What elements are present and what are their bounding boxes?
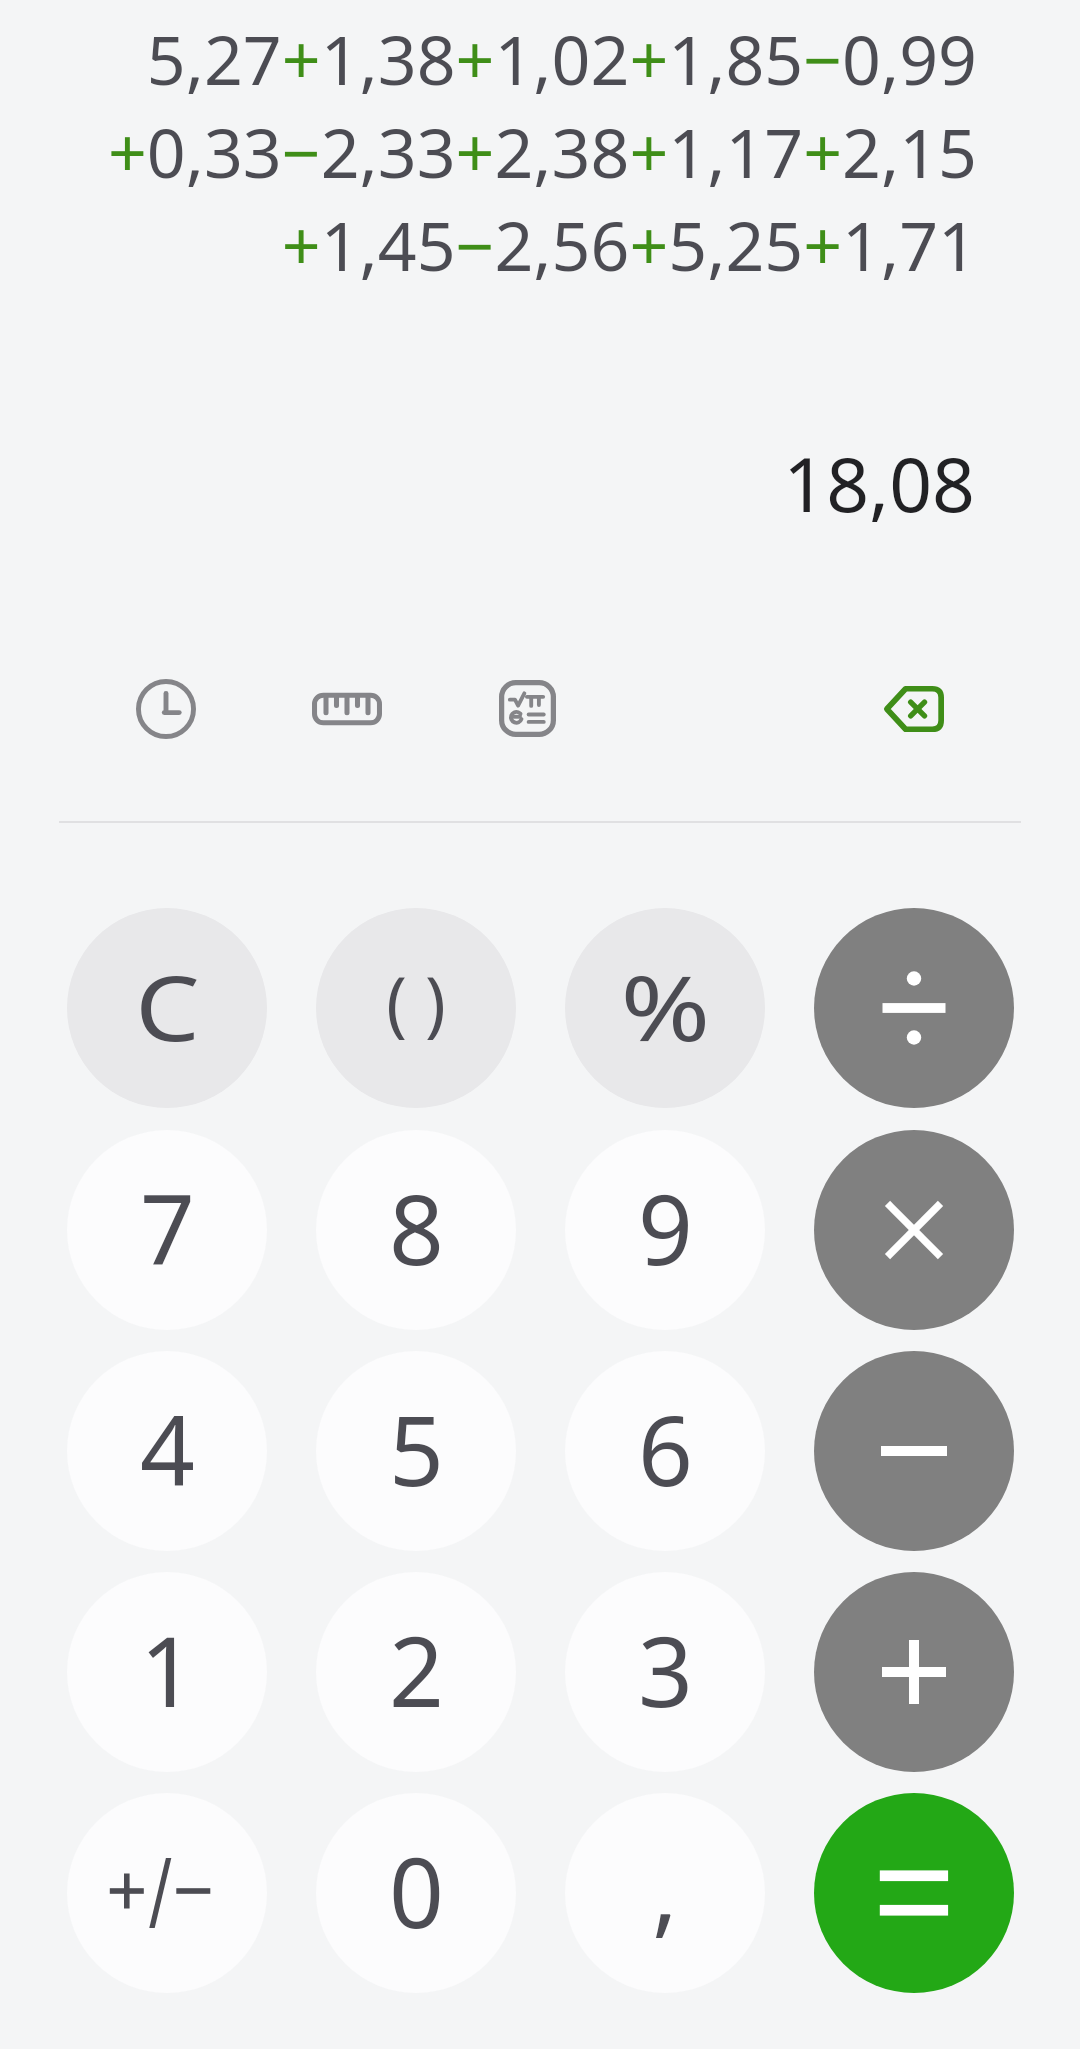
button[interactable]: 4: [67, 1351, 267, 1551]
staticText: 9: [638, 1162, 693, 1293]
staticText: 6: [638, 1383, 693, 1514]
button[interactable]: %: [565, 908, 765, 1108]
button[interactable]: Multiply: [814, 1130, 1014, 1330]
staticText: ,: [652, 1822, 678, 1953]
button[interactable]: C: [67, 908, 267, 1108]
button[interactable]: Backspace: [862, 657, 966, 761]
staticText: 18,08: [0, 432, 975, 534]
button[interactable]: Unit converter: [295, 657, 399, 761]
button[interactable]: 2: [316, 1572, 516, 1772]
button[interactable]: Equals: [814, 1793, 1014, 1993]
button[interactable]: 1: [67, 1572, 267, 1772]
button[interactable]: 0: [316, 1793, 516, 1993]
staticText: 7: [140, 1162, 195, 1293]
staticText: 3: [638, 1604, 693, 1735]
staticText: 1: [140, 1604, 195, 1735]
staticText: ( ): [386, 952, 446, 1050]
staticText: 4: [140, 1383, 195, 1514]
button[interactable]: History: [114, 657, 218, 761]
staticText: 8: [389, 1162, 444, 1293]
button[interactable]: ,: [565, 1793, 765, 1993]
staticText: 2: [389, 1604, 444, 1735]
button[interactable]: 6: [565, 1351, 765, 1551]
button[interactable]: 8: [316, 1130, 516, 1330]
button[interactable]: Add: [814, 1572, 1014, 1772]
staticText: 5,27+1,38+1,02+1,85−0,99 +0,33−2,33+2,38…: [0, 12, 977, 291]
staticText: %: [620, 945, 710, 1068]
button[interactable]: Plus minus: [67, 1793, 267, 1993]
button[interactable]: Divide: [814, 908, 1014, 1108]
button[interactable]: Subtract: [814, 1351, 1014, 1551]
staticText: C: [135, 945, 200, 1068]
button[interactable]: 3: [565, 1572, 765, 1772]
button[interactable]: 7: [67, 1130, 267, 1330]
button[interactable]: Scientific calculator: [475, 656, 579, 760]
button[interactable]: ( ): [316, 908, 516, 1108]
staticText: 0: [389, 1825, 444, 1956]
staticText: 5: [389, 1383, 444, 1514]
button[interactable]: 9: [565, 1130, 765, 1330]
button[interactable]: 5: [316, 1351, 516, 1551]
